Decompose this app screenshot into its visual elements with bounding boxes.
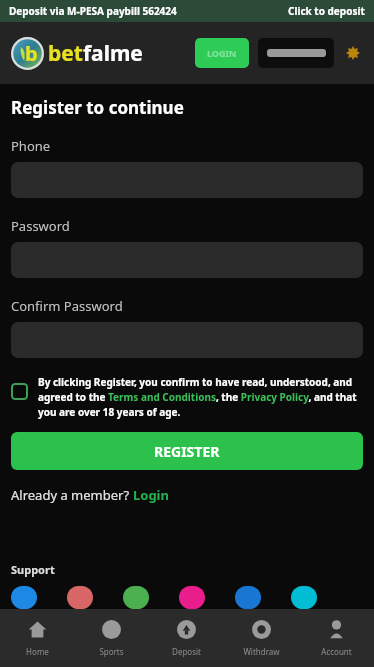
button[interactable]: Menu [343,43,363,63]
button[interactable]: Support channel 3 [123,586,149,609]
staticText: Password [11,217,70,235]
staticText: Confirm Password [11,297,123,315]
button[interactable]: Support channel 2 [67,586,93,609]
staticText: Login [133,486,169,504]
staticText: b [25,40,38,67]
button[interactable]: Deposit [149,609,224,667]
staticText: Home [26,646,49,657]
button[interactable]: Sports [74,609,149,667]
staticText: REGISTER [154,442,220,461]
staticText: By clicking Register, you confirm to hav… [38,375,363,419]
staticText: Support [11,562,55,577]
button[interactable]: LOGIN [195,38,249,68]
staticText: LOGIN [207,47,237,59]
button[interactable]: Support channel 4 [179,586,205,609]
staticText: Withdraw [243,646,280,657]
button[interactable]: REGISTER [11,432,363,470]
button[interactable]: Support channel 5 [235,586,261,609]
button[interactable]: Deposit via M-PESA paybill 562424 [0,0,374,22]
staticText: Sports [99,646,124,657]
button[interactable]: Home [0,609,74,667]
button[interactable]: Support channel 1 [11,586,37,609]
staticText: Already a member? [11,486,133,504]
staticText: Deposit [172,646,201,657]
staticText: Deposit via M-PESA paybill 562424 [9,4,177,18]
button[interactable]: Withdraw [224,609,299,667]
staticText: Account [321,646,352,657]
staticText: betfalme [48,39,143,68]
button[interactable] [258,38,334,68]
staticText: Register to continue [11,96,184,119]
staticText: Phone [11,137,51,155]
button[interactable]: Already a member? [11,486,169,504]
button[interactable]: Account [299,609,374,667]
staticText: Click to deposit [288,4,365,18]
button[interactable]: Support channel 6 [291,586,317,609]
button[interactable]: b [11,37,143,70]
button[interactable]: Accept terms [11,383,28,400]
